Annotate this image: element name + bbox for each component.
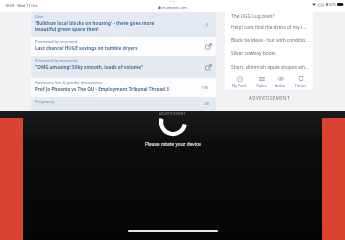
staticText: Last chance! HUGE savings on tumble drye…: [35, 45, 195, 51]
staticText: ADVERTISEMENT: [249, 95, 290, 101]
staticText: 106: [201, 85, 209, 91]
button[interactable]: Silver cowboy boots: [225, 47, 313, 60]
staticText: Pregnancy: [35, 99, 55, 104]
staticText: Chat: [35, 14, 44, 19]
staticText: 'Bulldoze local blocks on housing' - the…: [35, 20, 163, 33]
button[interactable]: Promoted by mumsnet: [31, 37, 216, 56]
button[interactable]: Active: [274, 76, 287, 88]
staticText: My Feed: [232, 83, 247, 88]
staticText: Promoted by mumsnet: [35, 58, 78, 63]
button[interactable]: Promoted by mumsnet: [31, 56, 216, 78]
button[interactable]: I'm on: [294, 76, 307, 88]
button[interactable]: Feminism: Sex & gender discussions: [31, 78, 216, 97]
button[interactable]: Short, slimmish apple shapes what o...: [225, 60, 313, 75]
staticText: "OMG amazing! Silky smooth, loads of vol…: [35, 64, 195, 70]
staticText: Prof Jo Phoenix vs The OU - Employment T…: [35, 86, 195, 92]
button[interactable]: Pregnancy: [31, 97, 216, 111]
staticText: mumsnet.com: [162, 5, 188, 10]
staticText: Topics: [256, 83, 267, 88]
staticText: 28: [204, 101, 209, 107]
staticText: Please rotate your device: [145, 141, 201, 147]
staticText: Black tie ideas - but with conditions r.…: [231, 37, 310, 44]
staticText: 10:59 Wed 11 Oct: [5, 3, 38, 8]
staticText: Help! cant find the dress of my imagi...: [231, 24, 310, 31]
staticText: Feminism: Sex & gender discussions: [35, 80, 102, 85]
staticText: Short, slimmish apple shapes what o...: [231, 64, 310, 71]
staticText: 5: [206, 22, 209, 28]
staticText: 82%: [329, 2, 336, 7]
staticText: ADVERTISEMENT: [159, 112, 186, 116]
button[interactable]: Help! cant find the dress of my imagi...: [225, 21, 313, 34]
staticText: Promoted by mumsnet: [35, 39, 78, 44]
staticText: Silver cowboy boots: [231, 50, 276, 57]
button[interactable]: The UGG Lug boot?: [225, 12, 313, 21]
button[interactable]: My Feed: [231, 76, 248, 88]
button[interactable]: Black tie ideas - but with conditions r.…: [225, 34, 313, 47]
staticText: • • •: [170, 0, 176, 4]
staticText: Active: [275, 83, 286, 88]
staticText: The UGG Lug boot?: [231, 13, 275, 20]
staticText: I'm on: [295, 83, 306, 88]
button[interactable]: Topics: [255, 76, 268, 88]
button[interactable]: Chat: [31, 12, 216, 37]
